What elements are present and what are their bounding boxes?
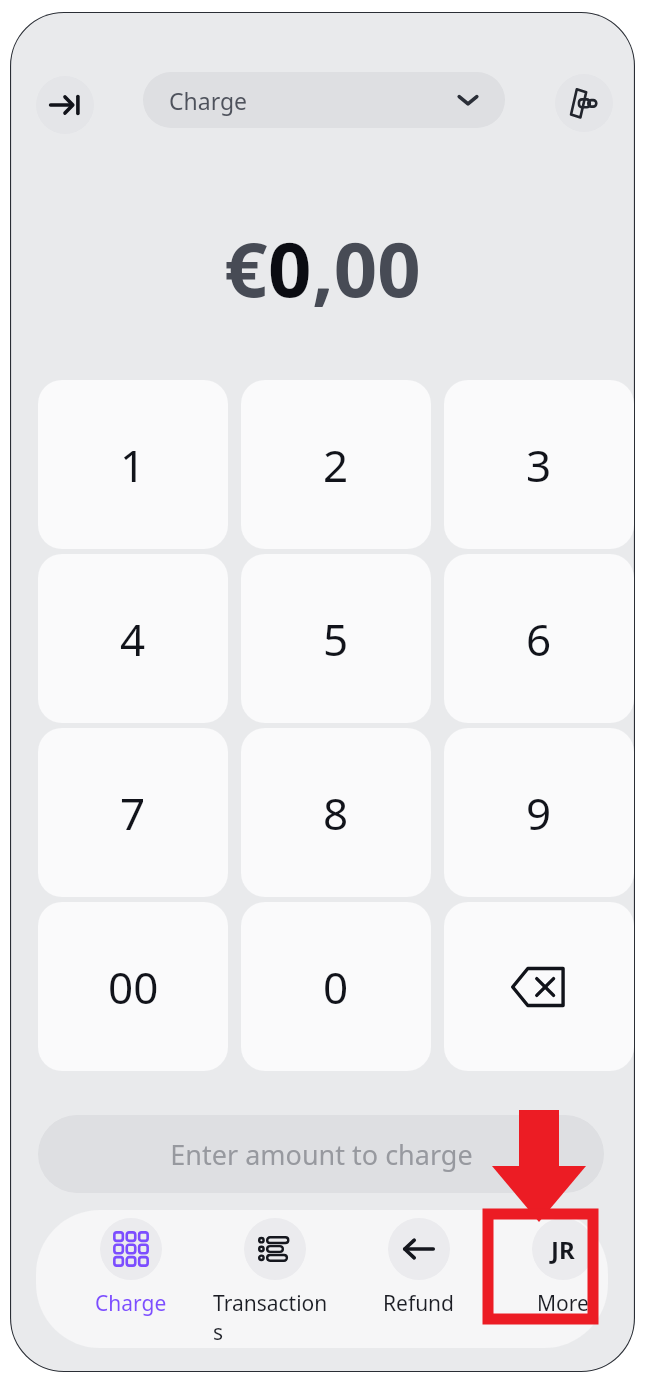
button[interactable]: 1 (38, 380, 228, 549)
button[interactable]: 00 (38, 902, 228, 1071)
staticText: ,00 (312, 216, 421, 320)
button[interactable]: 4 (38, 554, 228, 723)
staticText: Transactions (213, 1289, 337, 1340)
button[interactable]: 5 (241, 554, 431, 723)
button[interactable]: Charge (143, 72, 505, 128)
staticText: 7 (120, 783, 146, 843)
staticText: € (224, 216, 268, 320)
button[interactable]: 7 (38, 728, 228, 897)
button[interactable]: 3 (444, 380, 634, 549)
staticText: Charge (169, 85, 248, 116)
button[interactable]: 2 (241, 380, 431, 549)
staticText: 2 (323, 435, 349, 495)
button[interactable]: Enter amount to charge (38, 1115, 604, 1193)
button[interactable]: Charge (69, 1218, 193, 1340)
button[interactable]: 9 (444, 728, 634, 897)
staticText: Enter amount to charge (170, 1136, 473, 1173)
staticText: 1 (120, 435, 146, 495)
staticText: 0 (323, 957, 349, 1017)
staticText: 9 (526, 783, 552, 843)
staticText: 00 (108, 957, 159, 1017)
staticText: 3 (526, 435, 552, 495)
staticText: More (537, 1289, 589, 1318)
button[interactable]: Close shift (36, 76, 94, 134)
button[interactable]: Tap to pay (555, 74, 613, 132)
button[interactable]: 0 (241, 902, 431, 1071)
staticText: 0 (268, 216, 312, 320)
button[interactable]: Refund (357, 1218, 481, 1340)
staticText: 8 (323, 783, 349, 843)
staticText: Refund (383, 1289, 455, 1318)
button[interactable]: 6 (444, 554, 634, 723)
staticText: 5 (323, 609, 349, 669)
button[interactable]: 8 (241, 728, 431, 897)
staticText: JR (551, 1233, 575, 1266)
staticText: 6 (526, 609, 552, 669)
button[interactable]: JR (501, 1218, 608, 1340)
staticText: 4 (120, 609, 146, 669)
button[interactable]: Backspace (444, 902, 634, 1071)
staticText: Charge (95, 1289, 167, 1318)
button[interactable]: Transactions (213, 1218, 337, 1340)
